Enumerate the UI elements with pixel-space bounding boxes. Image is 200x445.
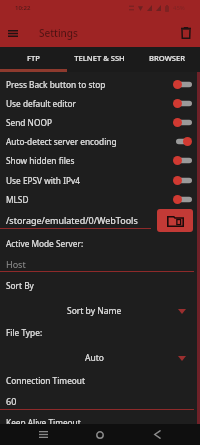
staticText: 10:22 xyxy=(15,4,31,12)
button[interactable]: Back xyxy=(148,424,166,445)
button[interactable]: Home xyxy=(91,424,109,445)
staticText: Active Mode Server: xyxy=(6,238,84,249)
button[interactable]: Use EPSV with IPv4 xyxy=(0,171,200,190)
staticText: /storage/emulated/0/WebTools xyxy=(6,214,138,226)
staticText: Press Back button to stop xyxy=(6,79,173,90)
staticText: Use default editor xyxy=(6,98,173,109)
button[interactable]: Auto xyxy=(0,349,200,367)
button[interactable]: TELNET & SSH xyxy=(66,47,133,69)
staticText: Sort by Name xyxy=(67,305,122,317)
staticText: 60 xyxy=(6,395,17,407)
button[interactable]: Recent apps xyxy=(34,424,52,445)
button[interactable]: Use default editor xyxy=(0,94,200,113)
staticText: 45% xyxy=(173,4,185,12)
staticText: Connection Timeout xyxy=(6,375,85,386)
button[interactable]: Host xyxy=(0,256,200,276)
staticText: Sort By xyxy=(6,280,34,291)
button[interactable]: Press Back button to stop xyxy=(0,75,200,94)
staticText: Auto-detect server encoding xyxy=(6,136,173,147)
button[interactable]: MLSD xyxy=(0,190,200,209)
button[interactable]: Sort by Name xyxy=(0,302,200,320)
staticText: MLSD xyxy=(6,194,173,205)
button[interactable]: 60 xyxy=(0,393,200,413)
button[interactable]: Send NOOP xyxy=(0,113,200,132)
staticText: BROWSER xyxy=(149,53,185,63)
staticText: Send NOOP xyxy=(6,117,173,128)
button[interactable]: Auto-detect server encoding xyxy=(0,132,200,151)
button[interactable]: Choose folder xyxy=(157,209,193,232)
staticText: Use EPSV with IPv4 xyxy=(6,175,173,186)
staticText: Keep Alive Timeout xyxy=(6,417,81,428)
button[interactable]: Show hidden files xyxy=(0,151,200,170)
button[interactable]: Open navigation menu xyxy=(0,20,26,46)
staticText: Settings xyxy=(39,26,78,40)
staticText: TELNET & SSH xyxy=(74,53,125,63)
staticText: File Type: xyxy=(6,327,43,338)
staticText: FTP xyxy=(27,53,40,63)
staticText: Show hidden files xyxy=(6,155,173,166)
button[interactable]: Delete xyxy=(174,21,198,45)
button[interactable]: BROWSER xyxy=(133,47,200,69)
button[interactable]: FTP xyxy=(0,47,66,69)
staticText: Host xyxy=(6,258,26,270)
staticText: Auto xyxy=(85,352,104,364)
